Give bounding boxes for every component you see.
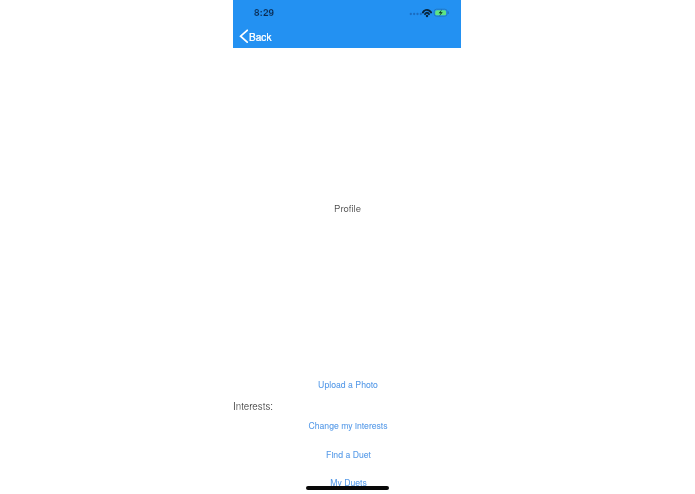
button[interactable]: Change my interests (298, 415, 398, 435)
staticText: My Duets (330, 476, 367, 488)
button[interactable]: Upload a Photo (308, 374, 388, 394)
button[interactable]: Back (235, 24, 279, 46)
staticText: Interests: (233, 399, 274, 413)
button[interactable]: My Duets (320, 472, 377, 492)
staticText: Profile (334, 201, 361, 215)
staticText: Upload a Photo (318, 378, 378, 390)
other: Signal, Wi-Fi and battery status (409, 3, 453, 19)
staticText: Change my interests (308, 419, 388, 431)
staticText: Back (249, 29, 272, 43)
button[interactable]: Find a Duet (316, 444, 381, 464)
staticText: Find a Duet (326, 448, 371, 460)
staticText: 8:29 (254, 5, 275, 19)
other: Back (235, 24, 279, 46)
